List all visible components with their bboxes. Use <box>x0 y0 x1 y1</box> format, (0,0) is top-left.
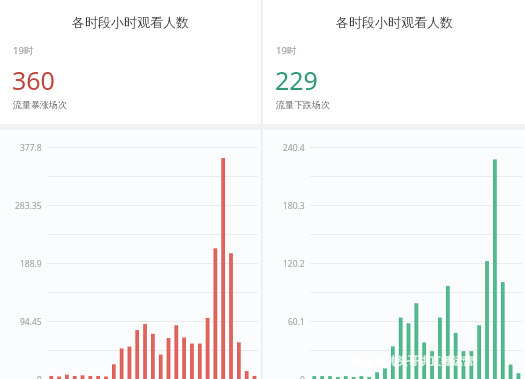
staticText: 60.1 <box>288 316 305 328</box>
staticText: 240.4 <box>283 142 305 154</box>
staticText: 19时 <box>13 44 34 57</box>
staticText: 283.35 <box>15 200 42 212</box>
staticText: 流量下跌场次 <box>276 99 330 110</box>
staticText: 120.2 <box>283 258 305 270</box>
staticText: 94.45 <box>20 316 42 328</box>
button[interactable]: 各时段小时观看人数 <box>263 0 525 124</box>
button[interactable]: 240.4 <box>263 130 525 379</box>
staticText: 229 <box>275 63 318 97</box>
staticText: 360 <box>12 63 55 97</box>
staticText: 流量暴涨场次 <box>13 99 67 110</box>
button[interactable]: 各时段小时观看人数 <box>0 0 261 124</box>
staticText: 180.3 <box>283 200 305 212</box>
staticText: 各时段小时观看人数 <box>336 14 453 30</box>
staticText: 0 <box>37 374 42 379</box>
staticText: 188.9 <box>20 258 42 270</box>
staticText: 377.8 <box>20 142 42 154</box>
staticText: 0 <box>300 374 305 379</box>
staticText: 头条 @砖头哥讲直播运营 <box>351 353 474 368</box>
staticText: 各时段小时观看人数 <box>72 14 189 30</box>
button[interactable]: 377.8 <box>0 130 261 379</box>
staticText: 19时 <box>276 44 297 57</box>
